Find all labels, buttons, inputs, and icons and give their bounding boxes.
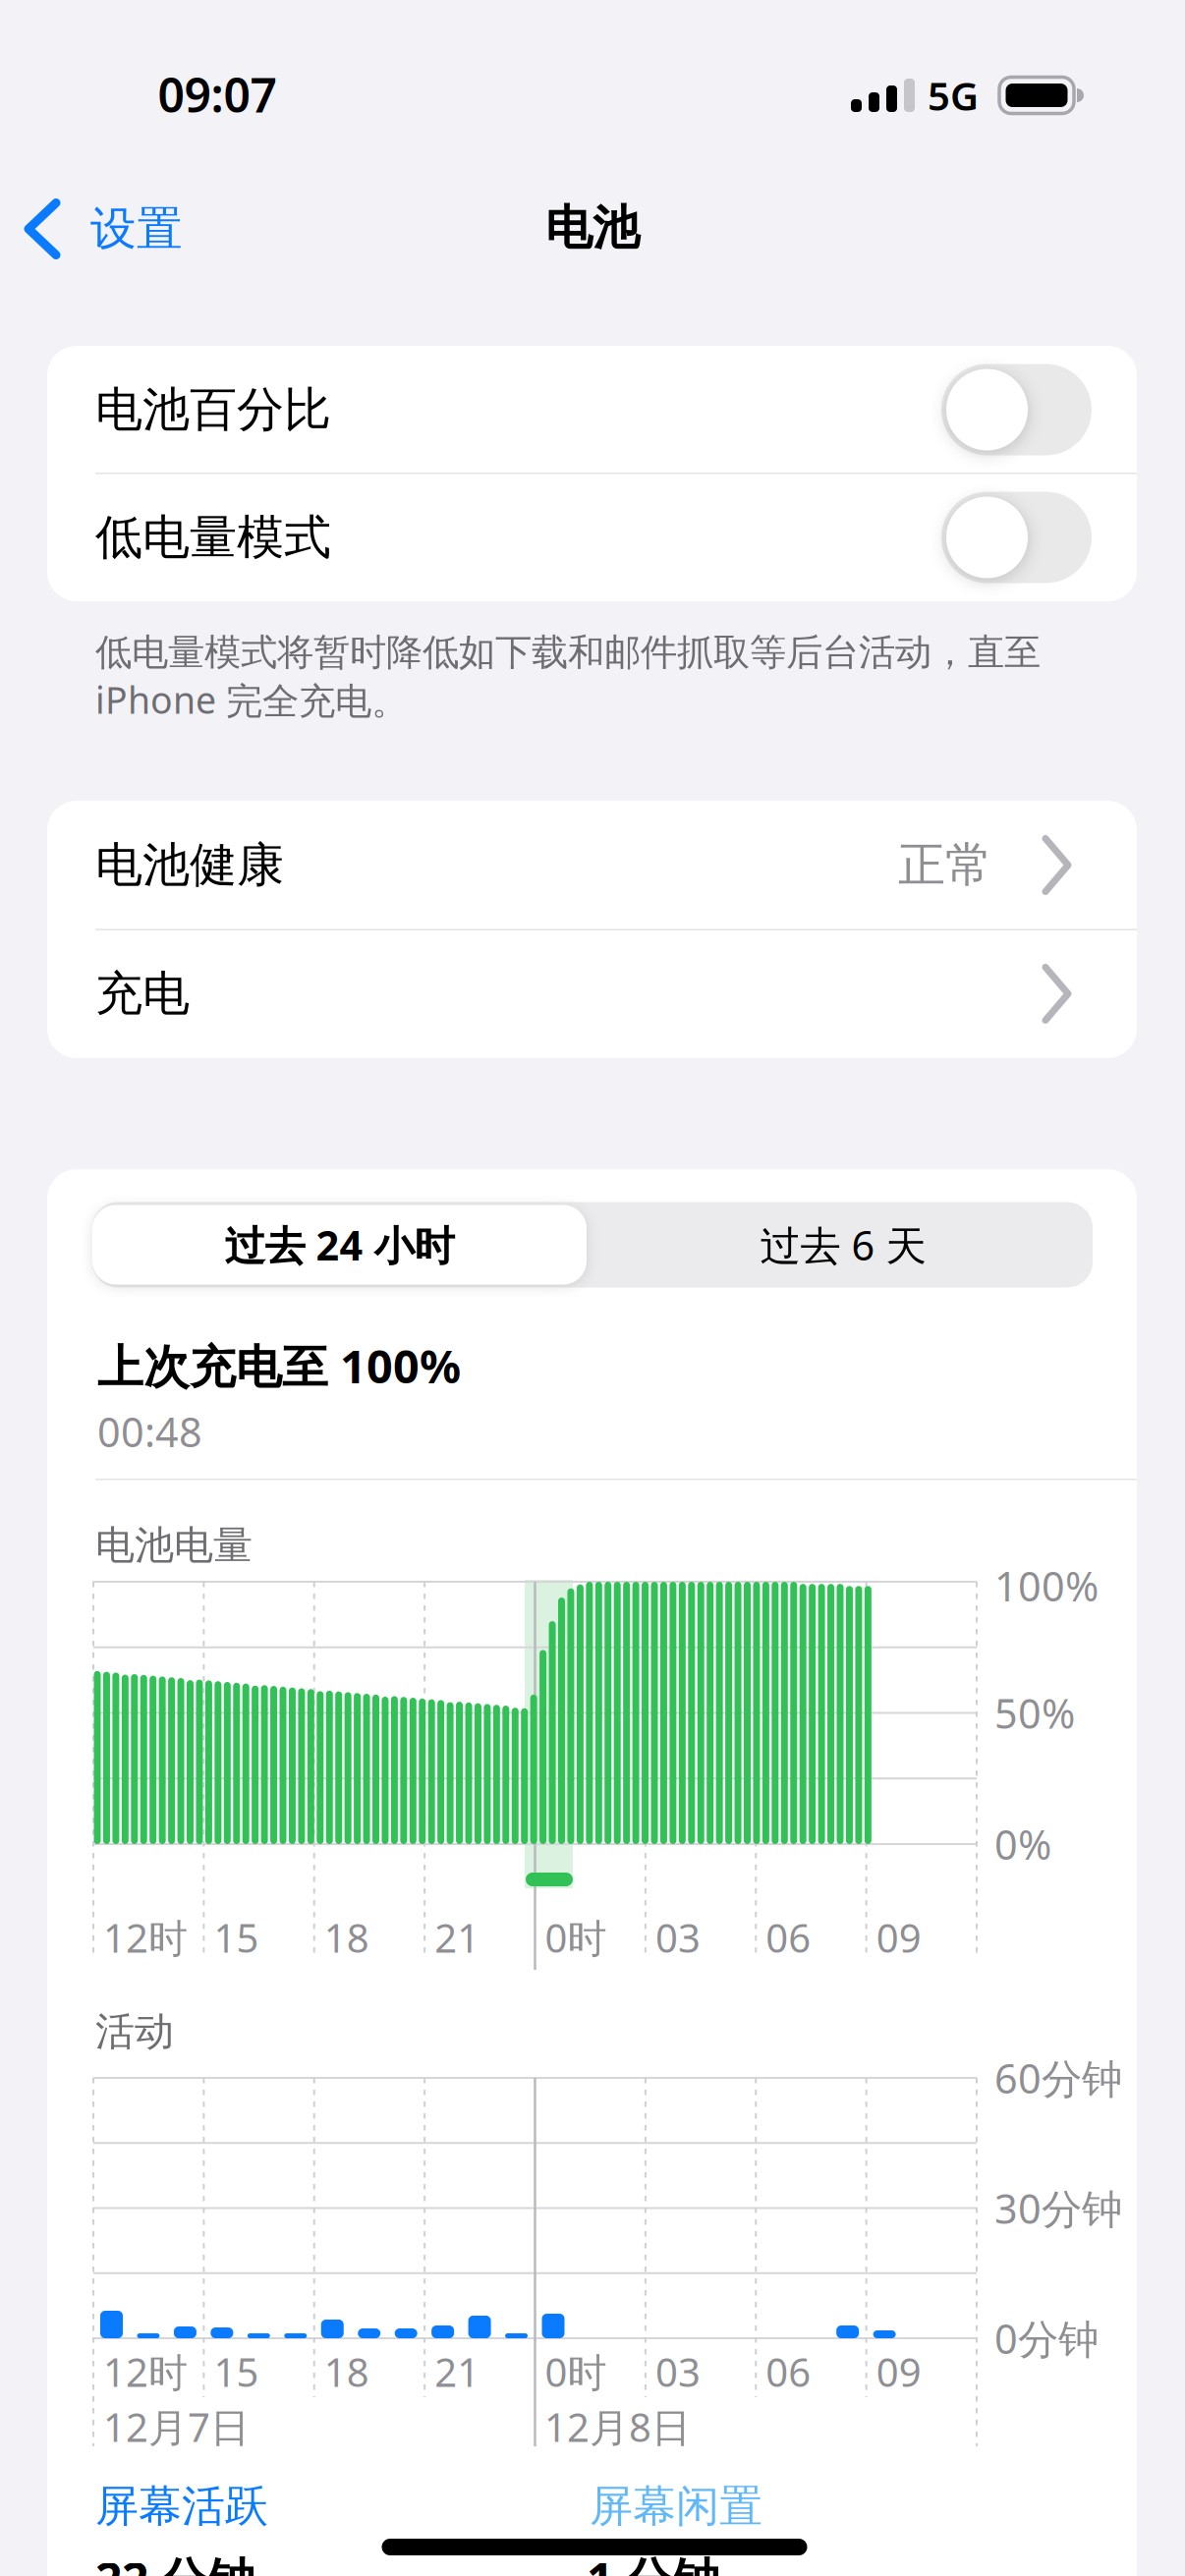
button[interactable]: 屏幕闲置 xyxy=(590,2483,884,2530)
staticText: 低电量模式将暂时降低如下载和邮件抓取等后台活动，直至 xyxy=(95,630,1041,675)
staticText: 03 xyxy=(655,1911,700,1963)
button[interactable]: 低电量模式 xyxy=(47,474,1137,601)
button[interactable]: 电池百分比 xyxy=(47,346,1137,474)
staticText: 50% xyxy=(994,1686,1075,1740)
staticText: 06 xyxy=(766,1911,811,1963)
staticText: 18 xyxy=(324,1911,369,1963)
button[interactable]: 电池健康 xyxy=(47,801,1137,929)
staticText: 电池电量 xyxy=(95,1521,253,1569)
staticText: 03 xyxy=(655,2346,700,2398)
staticText: 21 xyxy=(434,2346,480,2398)
staticText: 09 xyxy=(876,2346,921,2398)
staticText: 屏幕活跃 xyxy=(95,2480,268,2533)
staticText: 09:07 xyxy=(158,63,277,126)
staticText: 06 xyxy=(766,2346,811,2398)
staticText: 30分钟 xyxy=(994,2181,1122,2235)
staticText: 22 分钟 xyxy=(95,2548,254,2576)
staticText: 12时 xyxy=(103,1911,188,1963)
button[interactable]: 设置 xyxy=(23,200,258,258)
staticText: 过去 6 天 xyxy=(760,1218,926,1272)
staticText: 1 分钟 xyxy=(587,2548,719,2576)
staticText: 过去 24 小时 xyxy=(225,1218,454,1272)
button[interactable]: 充电 xyxy=(47,929,1137,1058)
staticText: 15 xyxy=(214,1911,259,1963)
staticText: iPhone 完全充电。 xyxy=(95,675,408,724)
staticText: 18 xyxy=(324,2346,369,2398)
staticText: 12时 xyxy=(103,2346,188,2398)
button[interactable]: 屏幕活跃 xyxy=(95,2483,390,2530)
staticText: 12月8日 xyxy=(544,2401,691,2453)
staticText: 0分钟 xyxy=(994,2311,1099,2365)
staticText: 正常 xyxy=(898,836,992,894)
staticText: 0% xyxy=(994,1817,1051,1871)
staticText: 活动 xyxy=(95,2008,174,2056)
staticText: 09 xyxy=(876,1911,921,1963)
staticText: 0时 xyxy=(545,2346,607,2398)
staticText: 0时 xyxy=(545,1911,607,1963)
staticText: 5G xyxy=(928,69,979,121)
staticText: 电池健康 xyxy=(95,836,284,894)
staticText: 00:48 xyxy=(97,1405,202,1458)
staticText: 电池 xyxy=(545,199,640,257)
staticText: 充电 xyxy=(95,965,190,1023)
staticText: 屏幕闲置 xyxy=(590,2480,762,2533)
button[interactable]: 过去 6 天 xyxy=(597,1202,1089,1288)
staticText: 12月7日 xyxy=(103,2401,250,2453)
staticText: 上次充电至 100% xyxy=(97,1335,461,1396)
staticText: 21 xyxy=(434,1911,480,1963)
staticText: 低电量模式 xyxy=(95,508,331,566)
staticText: 15 xyxy=(214,2346,259,2398)
staticText: 电池百分比 xyxy=(95,381,331,439)
button[interactable]: 过去 24 小时 xyxy=(92,1202,587,1288)
staticText: 100% xyxy=(994,1559,1099,1613)
staticText: 设置 xyxy=(90,201,183,257)
staticText: 60分钟 xyxy=(994,2051,1122,2105)
